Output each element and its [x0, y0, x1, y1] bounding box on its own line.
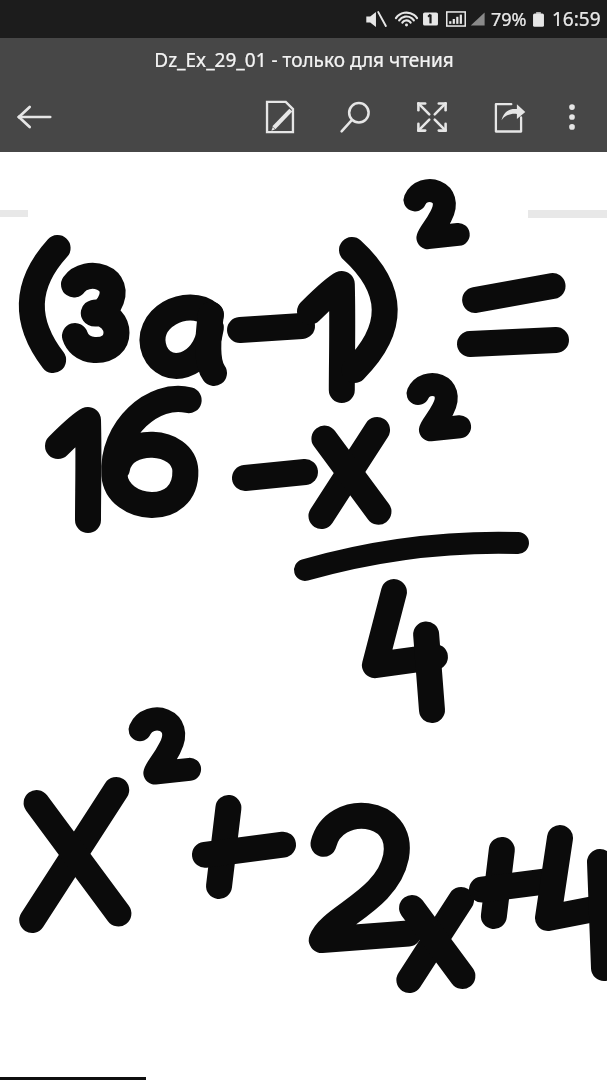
staticText: 16:59	[552, 6, 601, 32]
staticText: Dz_Ex_29_01 - только для чтения	[154, 47, 454, 73]
staticText: 79%	[491, 7, 527, 32]
button[interactable]: Share	[475, 82, 541, 152]
button[interactable]: Search	[323, 82, 389, 152]
button[interactable]: More options	[543, 82, 601, 152]
button[interactable]: Fullscreen	[399, 82, 465, 152]
button[interactable]: Edit	[247, 82, 313, 152]
button[interactable]: Back	[0, 82, 68, 152]
